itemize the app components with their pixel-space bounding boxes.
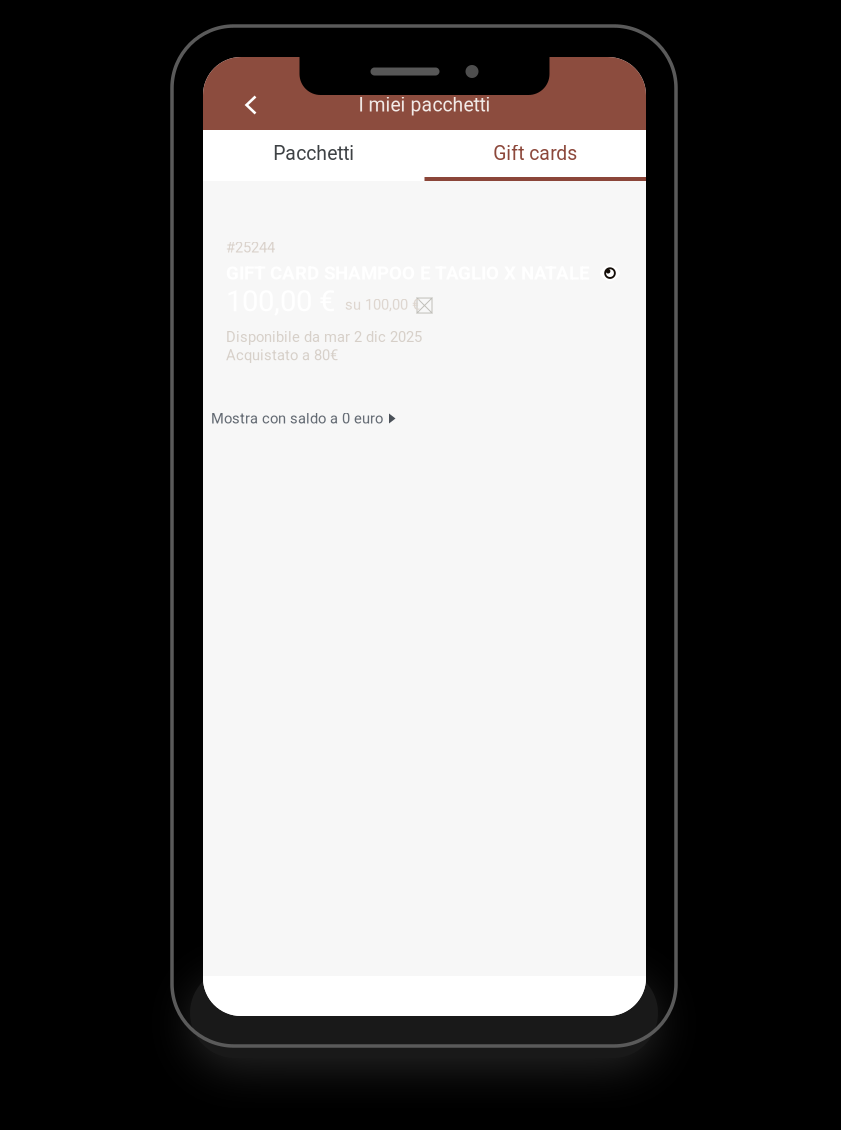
button[interactable]: Gift cards	[424, 130, 646, 177]
staticText: Pacchetti	[273, 142, 354, 165]
staticText: su 100,00 €	[345, 296, 420, 313]
staticText: #25244	[226, 239, 275, 256]
image	[416, 297, 432, 313]
staticText: Mostra con saldo a 0 euro	[211, 410, 383, 427]
button[interactable]: Mostra con saldo a 0 euro	[203, 403, 646, 440]
button[interactable]: Back	[228, 81, 274, 129]
staticText: Gift cards	[493, 142, 577, 165]
staticText: Acquistato a 80€	[226, 347, 338, 364]
button[interactable]: Pacchetti	[203, 130, 424, 177]
staticText: GIFT CARD SHAMPOO E TAGLIO X NATALE	[226, 262, 590, 284]
staticText: I miei pacchetti	[358, 94, 490, 116]
button[interactable]: #25244	[203, 208, 646, 403]
staticText: Disponibile da mar 2 dic 2025	[226, 328, 422, 346]
